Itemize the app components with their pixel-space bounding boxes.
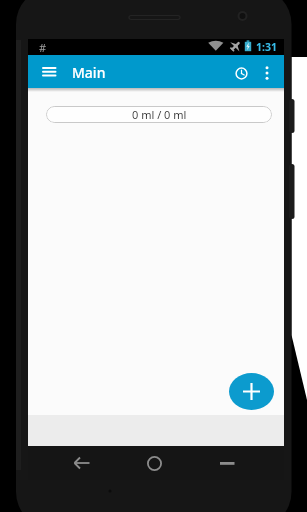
button[interactable] bbox=[258, 61, 275, 85]
button[interactable] bbox=[62, 448, 102, 478]
staticText: Main bbox=[72, 63, 106, 82]
button[interactable] bbox=[229, 61, 253, 85]
staticText: 0 ml / 0 ml bbox=[132, 107, 187, 122]
button[interactable] bbox=[207, 448, 247, 478]
staticText: 1:31 bbox=[256, 40, 277, 54]
button[interactable] bbox=[229, 373, 274, 410]
button[interactable]: 0 ml / 0 ml bbox=[46, 106, 272, 123]
button[interactable] bbox=[134, 448, 174, 478]
staticText: # bbox=[39, 40, 47, 55]
button[interactable] bbox=[35, 61, 63, 83]
